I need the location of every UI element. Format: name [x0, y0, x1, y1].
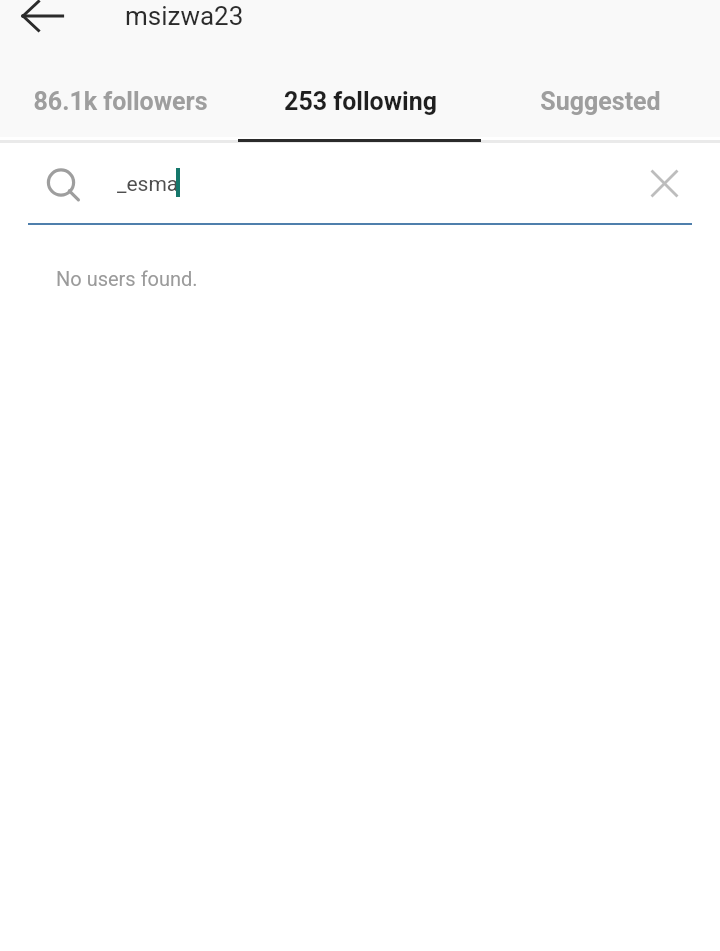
staticText: Suggested: [540, 87, 661, 116]
staticText: 86.1k followers: [33, 87, 208, 116]
button[interactable]: Clear search: [639, 158, 690, 209]
button[interactable]: Search: [40, 161, 92, 213]
staticText: msizwa23: [125, 1, 244, 31]
button[interactable]: Suggested: [480, 60, 720, 143]
staticText: _esma: [117, 172, 179, 197]
staticText: No users found.: [56, 267, 198, 290]
staticText: 253 following: [284, 87, 437, 116]
button[interactable]: 86.1k followers: [0, 60, 240, 143]
button[interactable]: 253 following: [240, 60, 480, 143]
button[interactable]: Back: [1, 0, 85, 58]
